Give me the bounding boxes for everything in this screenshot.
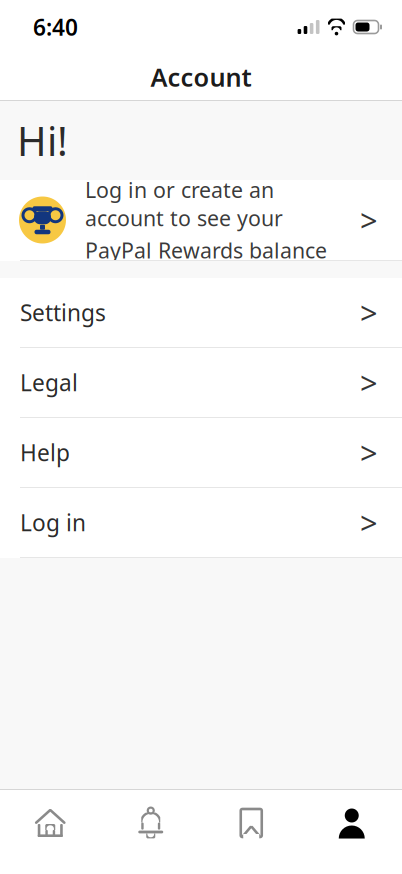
staticText: >: [360, 502, 378, 543]
staticText: Log in or create an account to see your: [85, 175, 283, 232]
staticText: 6:40: [33, 12, 78, 42]
button[interactable]: Settings: [0, 278, 402, 348]
staticText: >: [360, 200, 378, 240]
button[interactable]: Home: [0, 790, 100, 856]
staticText: >: [360, 362, 378, 403]
staticText: Hi!: [17, 114, 68, 167]
button[interactable]: Account: [301, 790, 402, 856]
button[interactable]: Help: [0, 418, 402, 488]
staticText: >: [360, 292, 378, 333]
button[interactable]: Log in: [0, 488, 402, 558]
staticText: PayPal Rewards balance: [85, 236, 327, 264]
staticText: Settings: [20, 297, 106, 327]
button[interactable]: Log in or create an account to see your: [0, 180, 402, 261]
button[interactable]: Legal: [0, 348, 402, 418]
staticText: >: [360, 432, 378, 473]
staticText: Log in: [20, 507, 86, 537]
staticText: Help: [20, 437, 70, 467]
staticText: Account: [150, 60, 251, 94]
button[interactable]: Activity: [100, 790, 201, 856]
button[interactable]: Saved: [201, 790, 301, 856]
staticText: Legal: [20, 367, 78, 397]
